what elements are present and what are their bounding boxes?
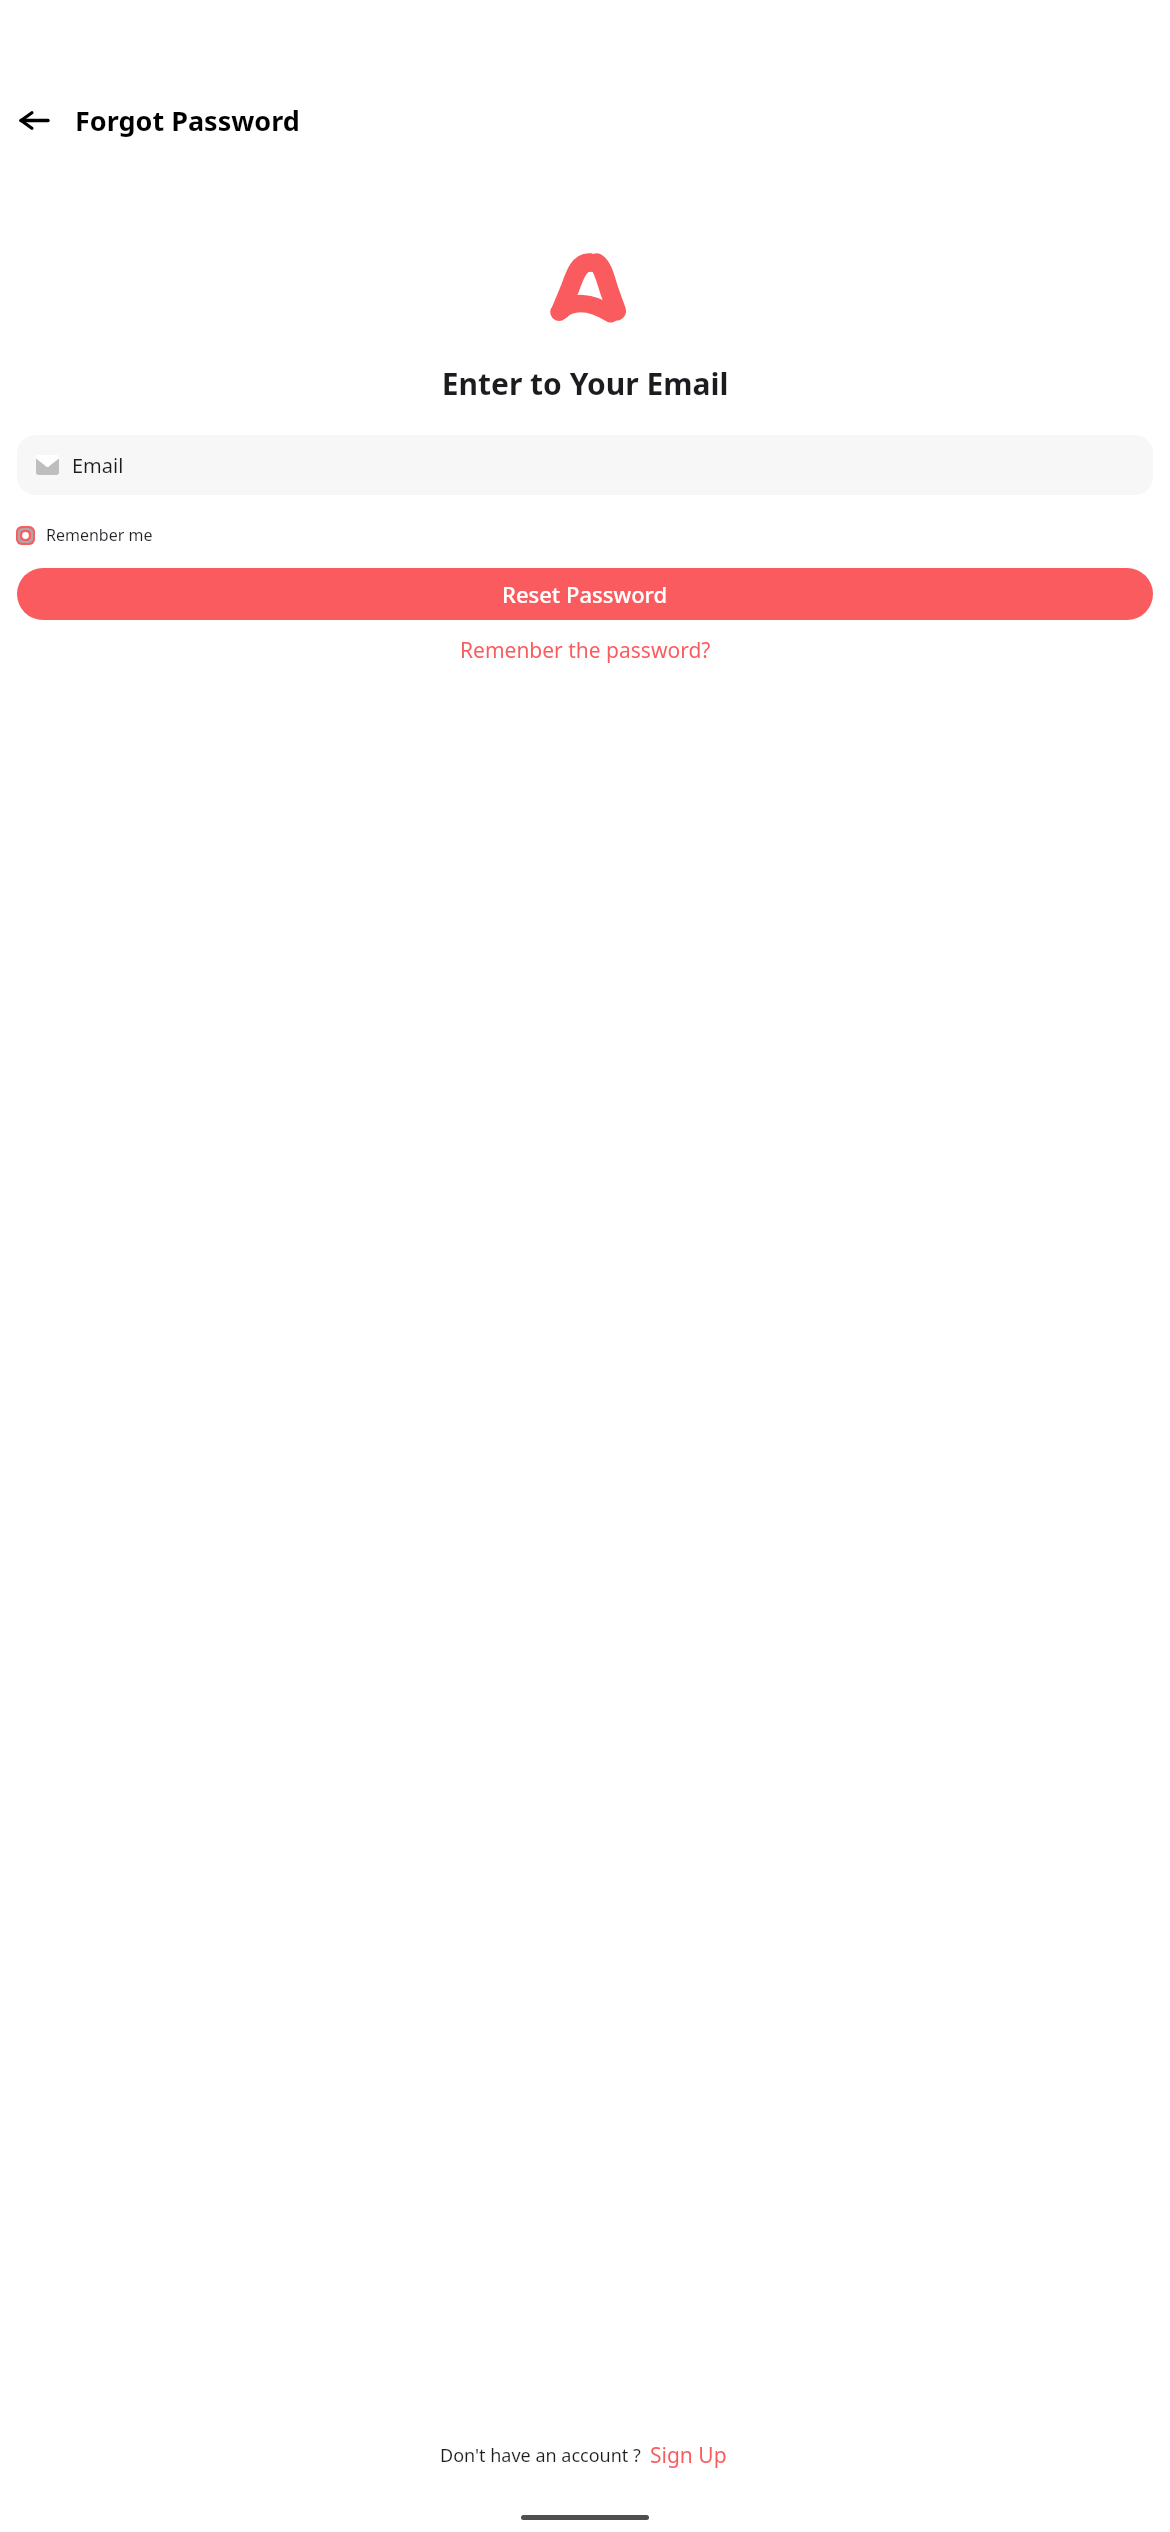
staticText: Reset Password <box>502 579 668 609</box>
button[interactable]: Reset Password <box>17 568 1153 620</box>
staticText: Don't have an account ? <box>440 2443 641 2468</box>
staticText: Enter to Your Email <box>0 363 1170 404</box>
staticText: Email <box>72 452 124 479</box>
staticText: Forgot Password <box>75 102 300 139</box>
button[interactable]: Email <box>17 435 1153 495</box>
staticText: Sign Up <box>650 2441 727 2470</box>
button[interactable]: Remenber the password? <box>450 630 721 671</box>
staticText: Remenber me <box>46 524 153 546</box>
button[interactable]: Sign Up <box>646 2438 731 2473</box>
button[interactable]: Back <box>11 97 57 143</box>
staticText: Remenber the password? <box>460 636 711 665</box>
button[interactable]: Remenber me <box>8 519 165 551</box>
